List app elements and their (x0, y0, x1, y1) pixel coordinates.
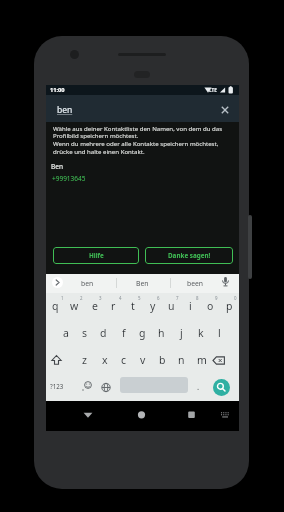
staticText: j (180, 326, 183, 340)
staticText: +99913645 (52, 174, 86, 183)
button[interactable]: ?123 (46, 379, 68, 393)
staticText: m (197, 353, 207, 367)
staticText: 0 (234, 295, 237, 301)
staticText: Ben (51, 162, 63, 171)
staticText: x (102, 353, 108, 367)
button[interactable] (80, 378, 95, 395)
button[interactable] (217, 102, 233, 118)
button[interactable]: v (133, 350, 152, 370)
staticText: o (207, 299, 214, 313)
staticText: k (198, 326, 204, 340)
button[interactable]: j (172, 323, 191, 343)
button[interactable]: . (193, 379, 203, 393)
staticText: 9 (215, 295, 218, 301)
staticText: c (121, 353, 127, 367)
staticText: 3 (99, 295, 102, 301)
button[interactable]: e (85, 296, 104, 316)
staticText: p (226, 299, 233, 313)
staticText: b (159, 353, 166, 367)
button[interactable]: c (114, 350, 133, 370)
button[interactable]: s (75, 323, 94, 343)
button[interactable]: f (114, 323, 133, 343)
button[interactable]: been (175, 276, 215, 290)
staticText: a (63, 326, 69, 340)
staticText: f (122, 326, 126, 340)
staticText: e (92, 299, 98, 313)
staticText: s (82, 326, 88, 340)
staticText: t (131, 299, 135, 313)
button[interactable]: l (210, 323, 229, 343)
button[interactable]: b (153, 350, 172, 370)
button[interactable] (52, 277, 63, 288)
button[interactable]: m (192, 350, 211, 370)
staticText: ben (81, 279, 94, 288)
staticText: . (197, 381, 200, 392)
staticText: l (218, 326, 221, 340)
button[interactable]: r (104, 296, 123, 316)
button[interactable] (98, 378, 114, 395)
staticText: 11:00 (50, 86, 65, 94)
staticText: u (168, 299, 175, 313)
button[interactable] (80, 407, 96, 422)
button[interactable]: w (65, 296, 84, 316)
staticText: been (187, 279, 204, 288)
button[interactable]: h (152, 323, 171, 343)
button[interactable]: Ben (122, 276, 162, 290)
staticText: r (111, 299, 116, 313)
staticText: ?123 (50, 382, 64, 390)
button[interactable]: x (95, 350, 114, 370)
button[interactable]: y (143, 296, 162, 316)
staticText: v (140, 353, 146, 367)
button[interactable]: u (162, 296, 181, 316)
button[interactable]: Hilfe (53, 247, 139, 264)
button[interactable]: Danke sagen! (145, 247, 233, 264)
button[interactable]: z (75, 350, 94, 370)
button[interactable]: g (133, 323, 152, 343)
staticText: ben (57, 104, 73, 116)
staticText: Ben (136, 279, 149, 288)
staticText: Danke sagen! (168, 251, 211, 260)
staticText: 5 (138, 295, 141, 301)
staticText: h (158, 326, 165, 340)
button[interactable]: a (56, 323, 75, 343)
staticText: 8 (196, 295, 199, 301)
staticText: 7 (176, 295, 179, 301)
button[interactable]: t (123, 296, 142, 316)
staticText: 4 (119, 295, 122, 301)
staticText: Hilfe (89, 251, 104, 260)
staticText: g (139, 326, 146, 340)
button[interactable]: q (46, 296, 65, 316)
button[interactable] (48, 350, 65, 369)
staticText: y (150, 299, 156, 313)
staticText: 1 (61, 295, 64, 301)
button[interactable]: n (172, 350, 191, 370)
staticText: w (70, 299, 79, 313)
staticText: LTE (209, 87, 217, 93)
staticText: z (82, 353, 87, 367)
staticText: n (178, 353, 185, 367)
button[interactable] (213, 379, 230, 396)
button[interactable]: d (94, 323, 113, 343)
button[interactable]: o (201, 296, 220, 316)
button[interactable]: p (220, 296, 239, 316)
staticText: i (189, 299, 192, 313)
button[interactable] (218, 408, 232, 421)
staticText: 6 (157, 295, 160, 301)
button[interactable]: ben (67, 276, 107, 290)
button[interactable]: i (181, 296, 200, 316)
staticText: d (100, 326, 107, 340)
button[interactable] (210, 350, 228, 369)
button[interactable] (134, 407, 149, 422)
button[interactable]: k (191, 323, 210, 343)
staticText: Wähle aus deiner Kontaktliste den Namen,… (53, 124, 223, 156)
staticText: 2 (80, 295, 83, 301)
staticText: q (52, 299, 59, 313)
button[interactable] (184, 407, 199, 422)
